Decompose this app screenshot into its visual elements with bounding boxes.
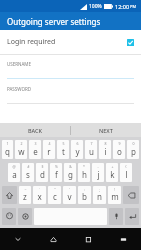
button[interactable]: Recent apps [71, 228, 106, 250]
staticText: : [84, 187, 85, 192]
staticText: " [54, 187, 56, 192]
button[interactable]: & [64, 163, 76, 182]
staticText: 7 [90, 141, 93, 146]
staticText: y [75, 146, 80, 157]
button[interactable]: 5 [57, 140, 69, 159]
staticText: g [68, 169, 73, 180]
button[interactable]: * [78, 163, 90, 182]
button[interactable]: Back [0, 228, 36, 250]
staticText: s [26, 169, 30, 180]
staticText: v [67, 191, 72, 202]
staticText: q [5, 146, 10, 157]
staticText: $ [41, 164, 44, 169]
staticText: PM [130, 4, 137, 9]
button[interactable]: Hide keyboard [106, 228, 141, 250]
button[interactable]: + [106, 163, 118, 182]
button[interactable]: ( [120, 163, 132, 182]
staticText: p [131, 146, 136, 157]
staticText: f [55, 169, 58, 180]
button[interactable]: - [92, 163, 104, 182]
button[interactable]: Shift [2, 186, 17, 204]
staticText: 4 [48, 141, 51, 146]
staticText: + [111, 164, 114, 169]
button[interactable]: % [50, 163, 62, 182]
staticText: ` [39, 187, 40, 192]
staticText: * [83, 164, 85, 169]
button[interactable]: NEXT [71, 123, 141, 137]
staticText: Outgoing server settings [7, 16, 101, 27]
button[interactable]: " [48, 186, 61, 204]
staticText: PASSWORD [7, 86, 32, 92]
button[interactable]: ' [63, 186, 76, 204]
staticText: l [125, 169, 128, 180]
staticText: r [47, 146, 51, 157]
staticText: k [110, 169, 115, 180]
staticText: i [104, 146, 107, 157]
button[interactable]: PASSWORD [0, 86, 141, 104]
staticText: ! [114, 187, 115, 192]
staticText: 2 [20, 141, 23, 146]
button[interactable]: Outgoing server settings [0, 12, 141, 30]
staticText: x [37, 191, 42, 202]
button[interactable]: Login required [0, 34, 141, 50]
button[interactable]: ; [93, 186, 106, 204]
staticText: ' [69, 187, 70, 192]
button[interactable]: # [22, 163, 34, 182]
button[interactable]: USERNAME [0, 61, 141, 79]
button[interactable]: 7 [85, 140, 97, 159]
button[interactable]: ! [108, 186, 121, 204]
button[interactable]: Backspace [123, 186, 139, 204]
staticText: o [117, 146, 122, 157]
button[interactable]: 1 [2, 140, 13, 159]
button[interactable]: 3 [29, 140, 41, 159]
staticText: & [69, 164, 72, 169]
staticText: u [89, 146, 94, 157]
staticText: e [33, 146, 38, 157]
button[interactable]: Enter [125, 208, 139, 225]
button[interactable]: 2 [15, 140, 27, 159]
button[interactable]: $ [36, 163, 48, 182]
button[interactable]: 8 [99, 140, 111, 159]
button[interactable]: 0 [127, 140, 139, 159]
staticText: @ [12, 164, 16, 169]
button[interactable]: 9 [113, 140, 125, 159]
button[interactable]: 6 [71, 140, 83, 159]
staticText: # [27, 164, 30, 169]
button[interactable]: @ [8, 163, 20, 182]
button[interactable]: ~ [19, 186, 31, 204]
staticText: t [62, 146, 65, 157]
button[interactable]: ` [33, 186, 46, 204]
staticText: 1 [6, 141, 9, 146]
button[interactable]: Voice input [109, 208, 123, 225]
staticText: Login required [7, 37, 56, 47]
button[interactable]: 4 [43, 140, 55, 159]
staticText: 5 [62, 141, 65, 146]
staticText: m [111, 191, 119, 202]
staticText: BACK [28, 127, 43, 134]
staticText: c [53, 191, 57, 202]
button[interactable]: Keyboard settings [18, 208, 32, 225]
staticText: 6 [76, 141, 79, 146]
staticText: h [82, 169, 87, 180]
staticText: n [97, 191, 102, 202]
staticText: 8 [104, 141, 107, 146]
staticText: ; [99, 187, 100, 192]
staticText: a [12, 169, 17, 180]
staticText: j [97, 169, 100, 180]
button[interactable]: : [78, 186, 91, 204]
staticText: d [40, 169, 45, 180]
staticText: USERNAME [7, 61, 31, 67]
staticText: w [18, 146, 25, 157]
staticText: 12:00 [115, 3, 130, 10]
staticText: % [55, 164, 58, 169]
staticText: 3 [34, 141, 37, 146]
button[interactable]: BACK [0, 123, 70, 137]
staticText: ~ [24, 187, 27, 192]
staticText: NEXT [99, 127, 113, 134]
staticText: ( [125, 164, 127, 169]
button[interactable]: Home [36, 228, 71, 250]
staticText: 100% [89, 3, 102, 10]
button[interactable]: Emoji and symbols [2, 208, 16, 225]
staticText: - [97, 164, 99, 169]
